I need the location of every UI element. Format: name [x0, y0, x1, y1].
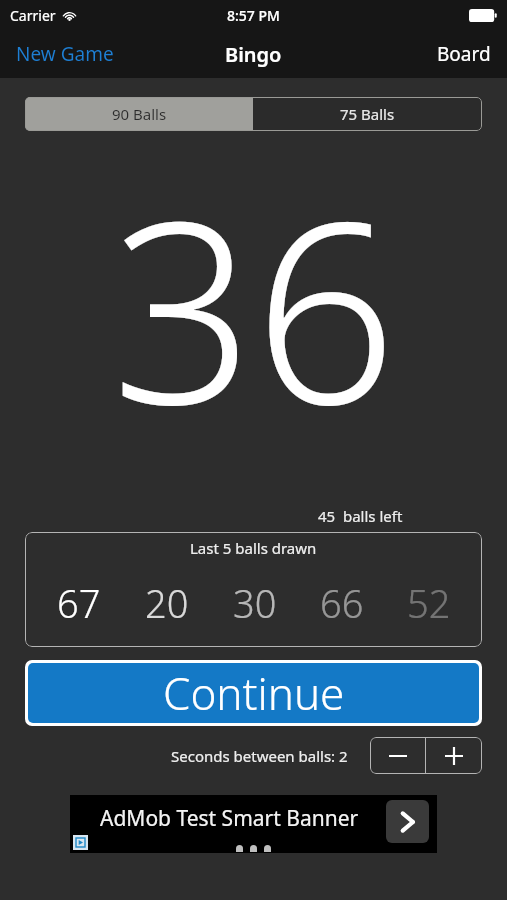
button[interactable]: 75 Balls — [253, 97, 482, 131]
staticText: Seconds between balls: 2 — [171, 746, 348, 766]
staticText: 20 — [145, 577, 189, 629]
staticText: 8:57 PM — [227, 6, 280, 25]
staticText: Board — [437, 41, 491, 67]
staticText: 45 balls left — [318, 506, 403, 526]
button[interactable]: AdMob Test Smart Banner — [70, 795, 437, 853]
staticText: 90 Balls — [112, 104, 167, 124]
staticText: 67 — [57, 577, 101, 629]
staticText: New Game — [16, 41, 114, 67]
staticText: 30 — [233, 577, 277, 629]
staticText: 52 — [407, 577, 451, 629]
staticText: 36 — [111, 136, 397, 477]
staticText: Bingo — [225, 41, 282, 68]
staticText: Last 5 balls drawn — [190, 538, 317, 558]
staticText: 66 — [320, 577, 364, 629]
staticText: AdMob Test Smart Banner — [100, 804, 359, 833]
button[interactable]: New Game — [0, 33, 130, 75]
button[interactable]: Increase seconds between balls — [426, 737, 482, 774]
button[interactable]: 90 Balls — [25, 97, 253, 131]
staticText: 75 Balls — [340, 104, 395, 124]
button[interactable]: Decrease seconds between balls — [370, 737, 425, 774]
staticText: Carrier — [10, 6, 56, 25]
button[interactable]: Board — [421, 33, 507, 75]
button[interactable]: Continue — [28, 663, 479, 723]
staticText: Continue — [163, 663, 345, 723]
button[interactable]: Open ad — [386, 800, 429, 843]
